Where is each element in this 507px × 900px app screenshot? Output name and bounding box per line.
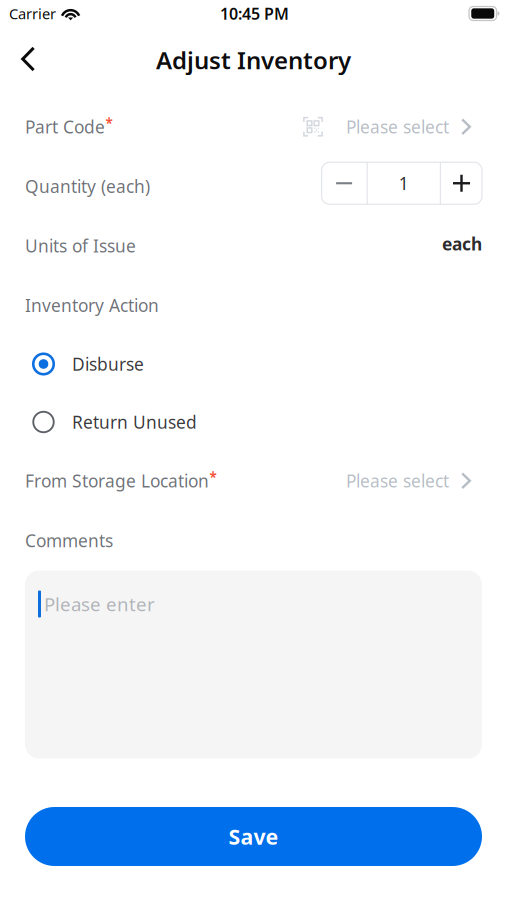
staticText: * (209, 468, 216, 486)
staticText: Save (228, 822, 278, 851)
staticText: From Storage Location (25, 469, 209, 492)
staticText: Quantity (each) (25, 175, 150, 198)
staticText: 10:45 PM (220, 3, 289, 24)
staticText: Adjust Inventory (156, 44, 351, 76)
button[interactable]: From Storage Location (25, 451, 482, 510)
staticText: Units of Issue (25, 234, 136, 257)
button[interactable]: Back (6, 37, 50, 81)
staticText: Return Unused (72, 410, 197, 433)
staticText: Disburse (72, 352, 144, 375)
staticText: Part Code (25, 115, 105, 138)
button[interactable]: Decrease quantity (322, 162, 367, 204)
staticText: Carrier (9, 4, 56, 23)
staticText: Comments (25, 529, 113, 552)
staticText: * (105, 114, 112, 132)
button[interactable]: Part Code (25, 97, 482, 156)
staticText: each (442, 232, 482, 255)
staticText: Please select (346, 115, 449, 138)
staticText: Please select (346, 469, 449, 492)
button[interactable]: Return Unused (25, 393, 482, 451)
button[interactable]: Increase quantity (441, 162, 482, 204)
button[interactable]: Disburse (25, 335, 482, 393)
staticText: 1 (399, 172, 409, 195)
button[interactable]: Please enter (25, 570, 482, 758)
staticText: Please enter (44, 592, 155, 616)
button[interactable]: Save (25, 807, 482, 866)
staticText: Inventory Action (25, 294, 159, 317)
